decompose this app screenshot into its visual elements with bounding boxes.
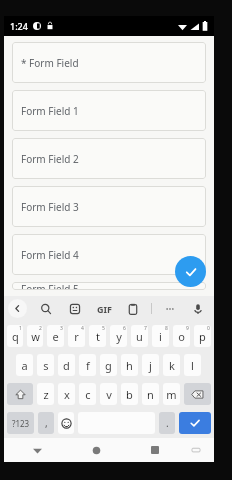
staticText: 8 (165, 325, 168, 332)
button[interactable]: m (163, 383, 180, 405)
staticText: Form Field 5 (21, 282, 79, 290)
staticText: p (199, 329, 206, 344)
button[interactable]: Emoji (58, 412, 74, 434)
button[interactable]: j (142, 354, 159, 376)
staticText: h (126, 358, 133, 373)
button[interactable]: Voice input (188, 299, 208, 319)
staticText: s (43, 358, 49, 373)
button[interactable]: b (121, 383, 138, 405)
button[interactable]: Form Field 4 (12, 234, 206, 275)
button[interactable]: y (110, 325, 127, 347)
button[interactable]: p (194, 325, 211, 347)
button[interactable]: Form Field 2 (12, 138, 206, 179)
button[interactable]: Recent apps (144, 439, 166, 461)
button[interactable]: g (100, 354, 117, 376)
button[interactable]: Backspace (184, 383, 211, 405)
button[interactable]: Form Field 5 (12, 282, 206, 290)
staticText: i (159, 329, 162, 344)
staticText: , (45, 416, 48, 430)
staticText: 1:24 (10, 20, 28, 32)
button[interactable]: x (58, 383, 75, 405)
staticText: 7 (144, 325, 147, 332)
button[interactable]: Switch keyboard (187, 441, 205, 459)
staticText: m (166, 387, 177, 402)
staticText: l (191, 358, 194, 373)
button[interactable]: . (159, 412, 175, 434)
button[interactable]: ?123 (7, 412, 34, 434)
button[interactable]: i (152, 325, 169, 347)
staticText: a (21, 358, 28, 373)
staticText: . (166, 416, 169, 430)
button[interactable]: * Form Field (12, 42, 206, 83)
button[interactable]: Shift (7, 383, 33, 405)
button[interactable]: f (79, 354, 96, 376)
staticText: z (43, 387, 49, 402)
button[interactable]: z (37, 383, 54, 405)
staticText: 5 (102, 325, 105, 332)
staticText: b (126, 387, 133, 402)
button[interactable]: u (131, 325, 148, 347)
staticText: c (85, 387, 91, 402)
staticText: Form Field 1 (21, 104, 79, 118)
staticText: v (106, 387, 112, 402)
staticText: 1 (19, 325, 22, 332)
staticText: w (31, 329, 40, 344)
button[interactable]: n (142, 383, 159, 405)
button[interactable]: Clipboard (123, 299, 143, 319)
staticText: Form Field 3 (21, 200, 79, 214)
button[interactable]: Back (8, 299, 27, 318)
staticText: n (147, 387, 154, 402)
button[interactable]: d (58, 354, 75, 376)
staticText: 0 (207, 325, 210, 332)
staticText: 3 (60, 325, 63, 332)
button[interactable]: Submit (175, 256, 206, 287)
staticText: 9 (186, 325, 189, 332)
button[interactable]: Form Field 3 (12, 186, 206, 227)
staticText: Form Field 2 (21, 152, 79, 166)
staticText: 6 (123, 325, 126, 332)
staticText: u (136, 329, 143, 344)
button[interactable]: Home (85, 439, 107, 461)
staticText: g (105, 358, 112, 373)
button[interactable]: Search (36, 299, 56, 319)
button[interactable]: w (27, 325, 43, 347)
button[interactable]: , (38, 412, 54, 434)
button[interactable]: h (121, 354, 138, 376)
button[interactable]: q (7, 325, 23, 347)
button[interactable]: o (173, 325, 190, 347)
button[interactable]: Form Field 1 (12, 90, 206, 131)
staticText: r (74, 329, 79, 344)
staticText: x (64, 387, 70, 402)
staticText: k (169, 358, 175, 373)
button[interactable]: k (163, 354, 180, 376)
staticText: q (12, 329, 19, 344)
button[interactable]: a (16, 354, 33, 376)
staticText: j (149, 358, 152, 373)
button[interactable]: Hide keyboard (26, 439, 48, 461)
staticText: * Form Field (21, 56, 79, 70)
button[interactable]: Stickers (65, 299, 85, 319)
staticText: GIF (97, 303, 112, 315)
button[interactable]: r (68, 325, 85, 347)
staticText: o (178, 329, 185, 344)
staticText: f (86, 358, 90, 373)
staticText: t (96, 329, 100, 344)
button[interactable]: e (47, 325, 64, 347)
staticText: 2 (39, 325, 42, 332)
button[interactable]: s (37, 354, 54, 376)
staticText: ?123 (12, 418, 30, 429)
staticText: y (116, 329, 122, 344)
button[interactable]: Enter (179, 412, 211, 434)
button[interactable]: More options (160, 299, 180, 319)
staticText: Form Field 4 (21, 248, 79, 262)
staticText: e (52, 329, 59, 344)
button[interactable]: l (184, 354, 201, 376)
button[interactable]: t (89, 325, 106, 347)
button[interactable]: GIF (94, 301, 115, 317)
button[interactable]: c (79, 383, 96, 405)
staticText: d (63, 358, 70, 373)
staticText: 4 (81, 325, 84, 332)
button[interactable]: v (100, 383, 117, 405)
